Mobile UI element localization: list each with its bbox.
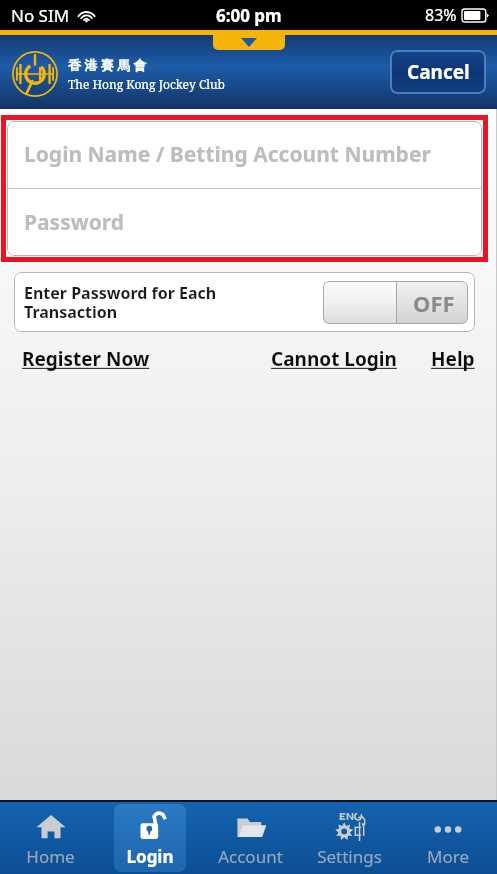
staticText: Register Now [22, 346, 150, 372]
staticText: 香 港 賽 馬 會 [68, 56, 147, 74]
staticText: 83% [425, 4, 457, 26]
button[interactable]: Cannot Login [271, 346, 397, 372]
staticText: No SIM [11, 4, 70, 27]
button[interactable]: Cancel [390, 50, 486, 94]
button[interactable]: More [412, 804, 484, 872]
staticText: 6:00 pm [216, 4, 282, 27]
button[interactable]: Home [14, 804, 86, 872]
staticText: Login [126, 845, 174, 868]
staticText: Login Name / Betting Account Number [24, 140, 431, 169]
button[interactable]: Login Name / Betting Account Number [7, 121, 482, 188]
button[interactable]: Password [7, 189, 482, 256]
staticText: The Hong Kong Jockey Club [68, 76, 225, 92]
staticText: Enter Password for Each Transaction [24, 282, 217, 323]
button[interactable]: Settings [313, 804, 385, 872]
staticText: Settings [317, 845, 382, 868]
button[interactable]: Expand [213, 35, 285, 50]
button[interactable]: Enter Password for Each Transaction [14, 272, 475, 332]
button[interactable]: Help [431, 346, 475, 372]
staticText: OFF [413, 288, 455, 318]
button[interactable]: Account [214, 804, 286, 872]
button[interactable]: Login [114, 804, 186, 872]
button[interactable]: Enter Password for Each Transaction togg… [323, 281, 468, 324]
staticText: Help [431, 346, 475, 372]
staticText: Password [24, 208, 125, 237]
staticText: Account [218, 845, 283, 868]
staticText: Cannot Login [271, 346, 397, 372]
staticText: Cancel [407, 59, 470, 85]
staticText: More [427, 845, 469, 868]
staticText: Home [26, 845, 75, 868]
button[interactable]: Register Now [22, 346, 150, 372]
